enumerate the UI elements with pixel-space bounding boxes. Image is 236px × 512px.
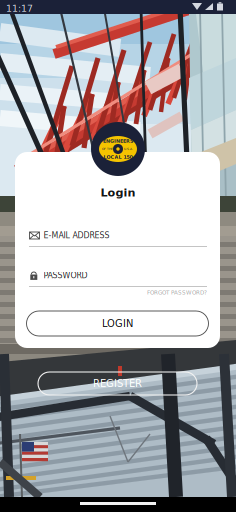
staticText: 11:17 [6,3,33,14]
staticText: FORGOT PASSWORD? [147,289,207,296]
staticText: OF THE [102,147,113,151]
button[interactable]: REGISTER [38,372,197,395]
staticText: U.S.A. [124,147,133,151]
staticText: REGISTER [93,378,142,389]
button[interactable]: FORGOT PASSWORD? [29,288,207,297]
staticText: PASSWORD [43,271,87,280]
staticText: LOGIN [102,318,133,329]
staticText: ENGINEERS [103,138,133,144]
button[interactable]: LOGIN [26,311,208,336]
staticText: LOCAL 150 [103,154,132,160]
staticText: E-MAIL ADDRESS [43,231,109,240]
staticText: Login [100,186,135,199]
